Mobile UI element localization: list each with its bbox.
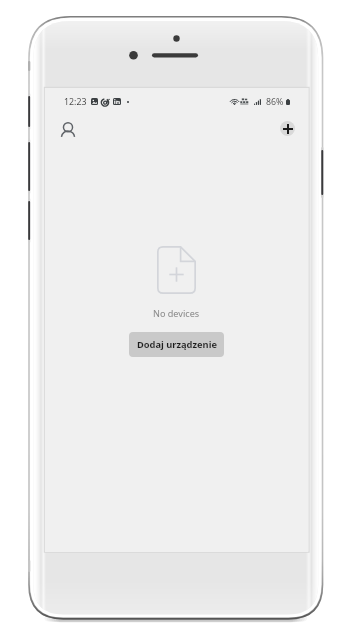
button[interactable]: Add device (280, 121, 295, 136)
button[interactable]: Account (55, 117, 81, 143)
staticText: 12:23 (64, 96, 87, 108)
staticText: Dodaj urządzenie (137, 338, 217, 351)
button[interactable]: Dodaj urządzenie (129, 332, 224, 357)
staticText: No devices (153, 307, 200, 319)
staticText: 86% (266, 96, 284, 108)
